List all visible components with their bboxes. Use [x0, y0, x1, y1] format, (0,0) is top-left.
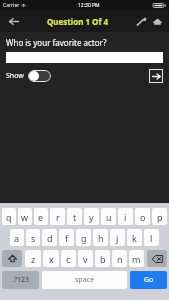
- button[interactable]: j: [110, 229, 125, 246]
- button[interactable]: k: [127, 229, 142, 246]
- button[interactable]: d: [42, 229, 57, 246]
- button[interactable]: .?123: [2, 271, 39, 289]
- button[interactable]: Show toggle: [28, 70, 51, 82]
- staticText: c: [66, 253, 71, 265]
- staticText: g: [81, 232, 87, 244]
- staticText: y: [89, 211, 94, 223]
- button[interactable]: u: [101, 208, 116, 225]
- staticText: Carrier: [3, 2, 20, 9]
- button[interactable]: c: [61, 250, 76, 267]
- staticText: .?123: [12, 275, 29, 285]
- button[interactable]: a: [10, 229, 24, 246]
- staticText: i: [124, 211, 127, 223]
- staticText: j: [116, 232, 119, 244]
- staticText: t: [73, 211, 77, 223]
- button[interactable]: l: [144, 229, 159, 246]
- button[interactable]: n: [112, 250, 127, 267]
- staticText: Show: [6, 71, 24, 81]
- button[interactable]: p: [152, 208, 167, 225]
- staticText: space: [75, 275, 94, 285]
- staticText: s: [31, 232, 36, 244]
- button[interactable]: Go: [130, 271, 167, 289]
- staticText: p: [157, 211, 163, 223]
- button[interactable]: e: [34, 208, 48, 225]
- staticText: r: [56, 211, 60, 223]
- button[interactable]: Home: [150, 14, 165, 29]
- staticText: x: [49, 253, 54, 265]
- staticText: Go: [144, 275, 154, 285]
- button[interactable]: q: [2, 208, 16, 225]
- button[interactable]: Backspace: [147, 250, 167, 267]
- staticText: v: [83, 253, 88, 265]
- button[interactable]: h: [93, 229, 108, 246]
- staticText: h: [98, 232, 104, 244]
- staticText: o: [140, 211, 146, 223]
- button[interactable]: Back: [4, 12, 22, 30]
- staticText: u: [106, 211, 112, 223]
- button[interactable]: Next: [149, 69, 163, 83]
- button[interactable]: o: [135, 208, 150, 225]
- staticText: Question 1 Of 4: [47, 16, 109, 27]
- button[interactable]: b: [95, 250, 110, 267]
- staticText: f: [65, 232, 69, 244]
- button[interactable]: space: [42, 271, 127, 289]
- staticText: z: [31, 253, 36, 265]
- staticText: q: [6, 211, 12, 223]
- button[interactable]: x: [43, 250, 59, 267]
- button[interactable]: w: [18, 208, 32, 225]
- button[interactable]: Settings: [134, 14, 149, 29]
- staticText: l: [150, 232, 153, 244]
- button[interactable]: Shift: [2, 250, 22, 267]
- button[interactable]: t: [67, 208, 82, 225]
- staticText: Who is your favorite actor?: [6, 37, 107, 48]
- button[interactable]: i: [118, 208, 133, 225]
- staticText: k: [132, 232, 137, 244]
- staticText: n: [117, 253, 123, 265]
- staticText: m: [132, 253, 141, 265]
- button[interactable]: m: [129, 250, 144, 267]
- button[interactable]: y: [84, 208, 99, 225]
- button[interactable]: f: [59, 229, 74, 246]
- staticText: 12:30 PM: [78, 2, 100, 9]
- button[interactable]: v: [78, 250, 93, 267]
- staticText: b: [100, 253, 106, 265]
- staticText: a: [14, 232, 20, 244]
- button[interactable]: r: [50, 208, 65, 225]
- button[interactable]: g: [76, 229, 91, 246]
- staticText: d: [47, 232, 53, 244]
- staticText: w: [21, 211, 29, 223]
- button[interactable]: s: [26, 229, 40, 246]
- staticText: e: [38, 211, 44, 223]
- button[interactable]: z: [25, 250, 41, 267]
